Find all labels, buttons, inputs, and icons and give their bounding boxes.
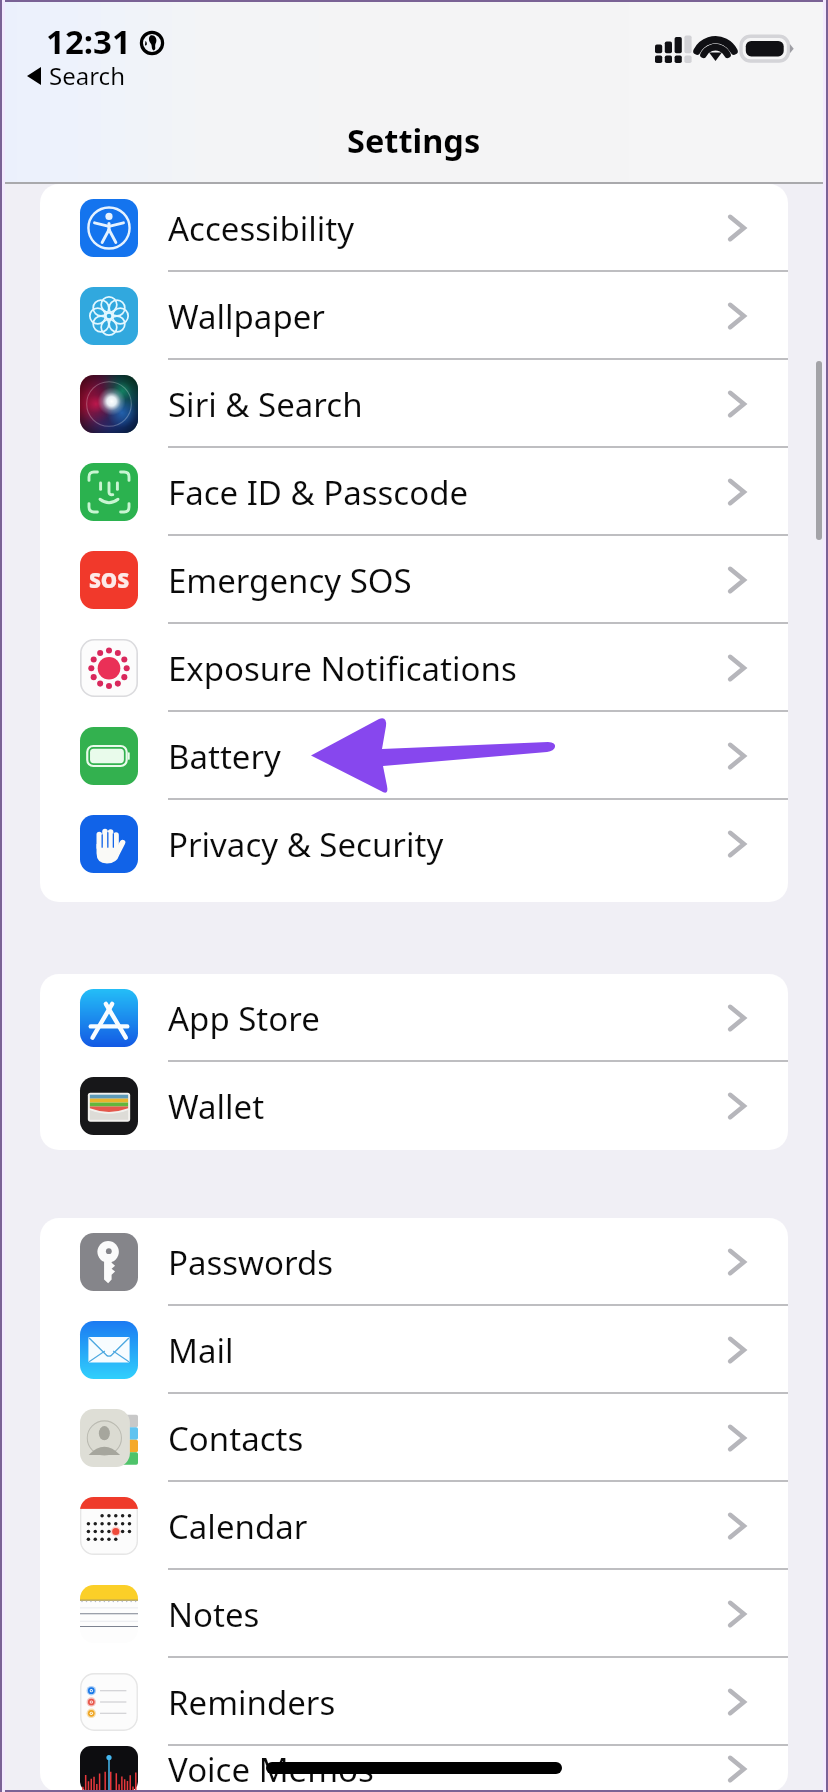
button[interactable]: Accessibility xyxy=(40,184,788,272)
staticText: App Store xyxy=(168,996,320,1041)
staticText: Battery xyxy=(168,734,281,779)
staticText: Passwords xyxy=(168,1240,334,1285)
button[interactable]: Calendar xyxy=(40,1482,788,1570)
staticText: Face ID & Passcode xyxy=(168,470,469,515)
button[interactable]: Wallet xyxy=(40,1062,788,1150)
staticText: Wallpaper xyxy=(168,294,325,339)
button[interactable]: Mail xyxy=(40,1306,788,1394)
button[interactable]: Exposure Notifications xyxy=(40,624,788,712)
staticText: Reminders xyxy=(168,1680,336,1725)
button[interactable]: Search xyxy=(27,59,125,92)
staticText: Accessibility xyxy=(168,206,355,251)
button[interactable]: App Store xyxy=(40,974,788,1062)
staticText: Emergency SOS xyxy=(168,558,412,603)
staticText: Privacy & Security xyxy=(168,822,444,867)
staticText: Settings xyxy=(347,118,481,162)
staticText: SOS xyxy=(89,566,130,594)
button[interactable]: SOS xyxy=(40,536,788,624)
staticText: Siri & Search xyxy=(168,382,363,427)
staticText: Exposure Notifications xyxy=(168,646,517,691)
staticText: Mail xyxy=(168,1328,234,1373)
staticText: Calendar xyxy=(168,1504,308,1549)
staticText: Search xyxy=(49,59,125,92)
button[interactable]: Contacts xyxy=(40,1394,788,1482)
button[interactable]: Notes xyxy=(40,1570,788,1658)
staticText: 12:31 xyxy=(46,19,131,64)
button[interactable]: Battery xyxy=(40,712,788,800)
button[interactable]: Voice Memos xyxy=(40,1746,788,1792)
staticText: Wallet xyxy=(168,1084,265,1129)
button[interactable]: Siri & Search xyxy=(40,360,788,448)
button[interactable]: Reminders xyxy=(40,1658,788,1746)
button[interactable]: Privacy & Security xyxy=(40,800,788,888)
button[interactable]: Face ID & Passcode xyxy=(40,448,788,536)
button[interactable]: Wallpaper xyxy=(40,272,788,360)
staticText: Voice Memos xyxy=(168,1747,374,1792)
button[interactable]: Passwords xyxy=(40,1218,788,1306)
staticText: Contacts xyxy=(168,1416,304,1461)
staticText: Notes xyxy=(168,1592,260,1637)
